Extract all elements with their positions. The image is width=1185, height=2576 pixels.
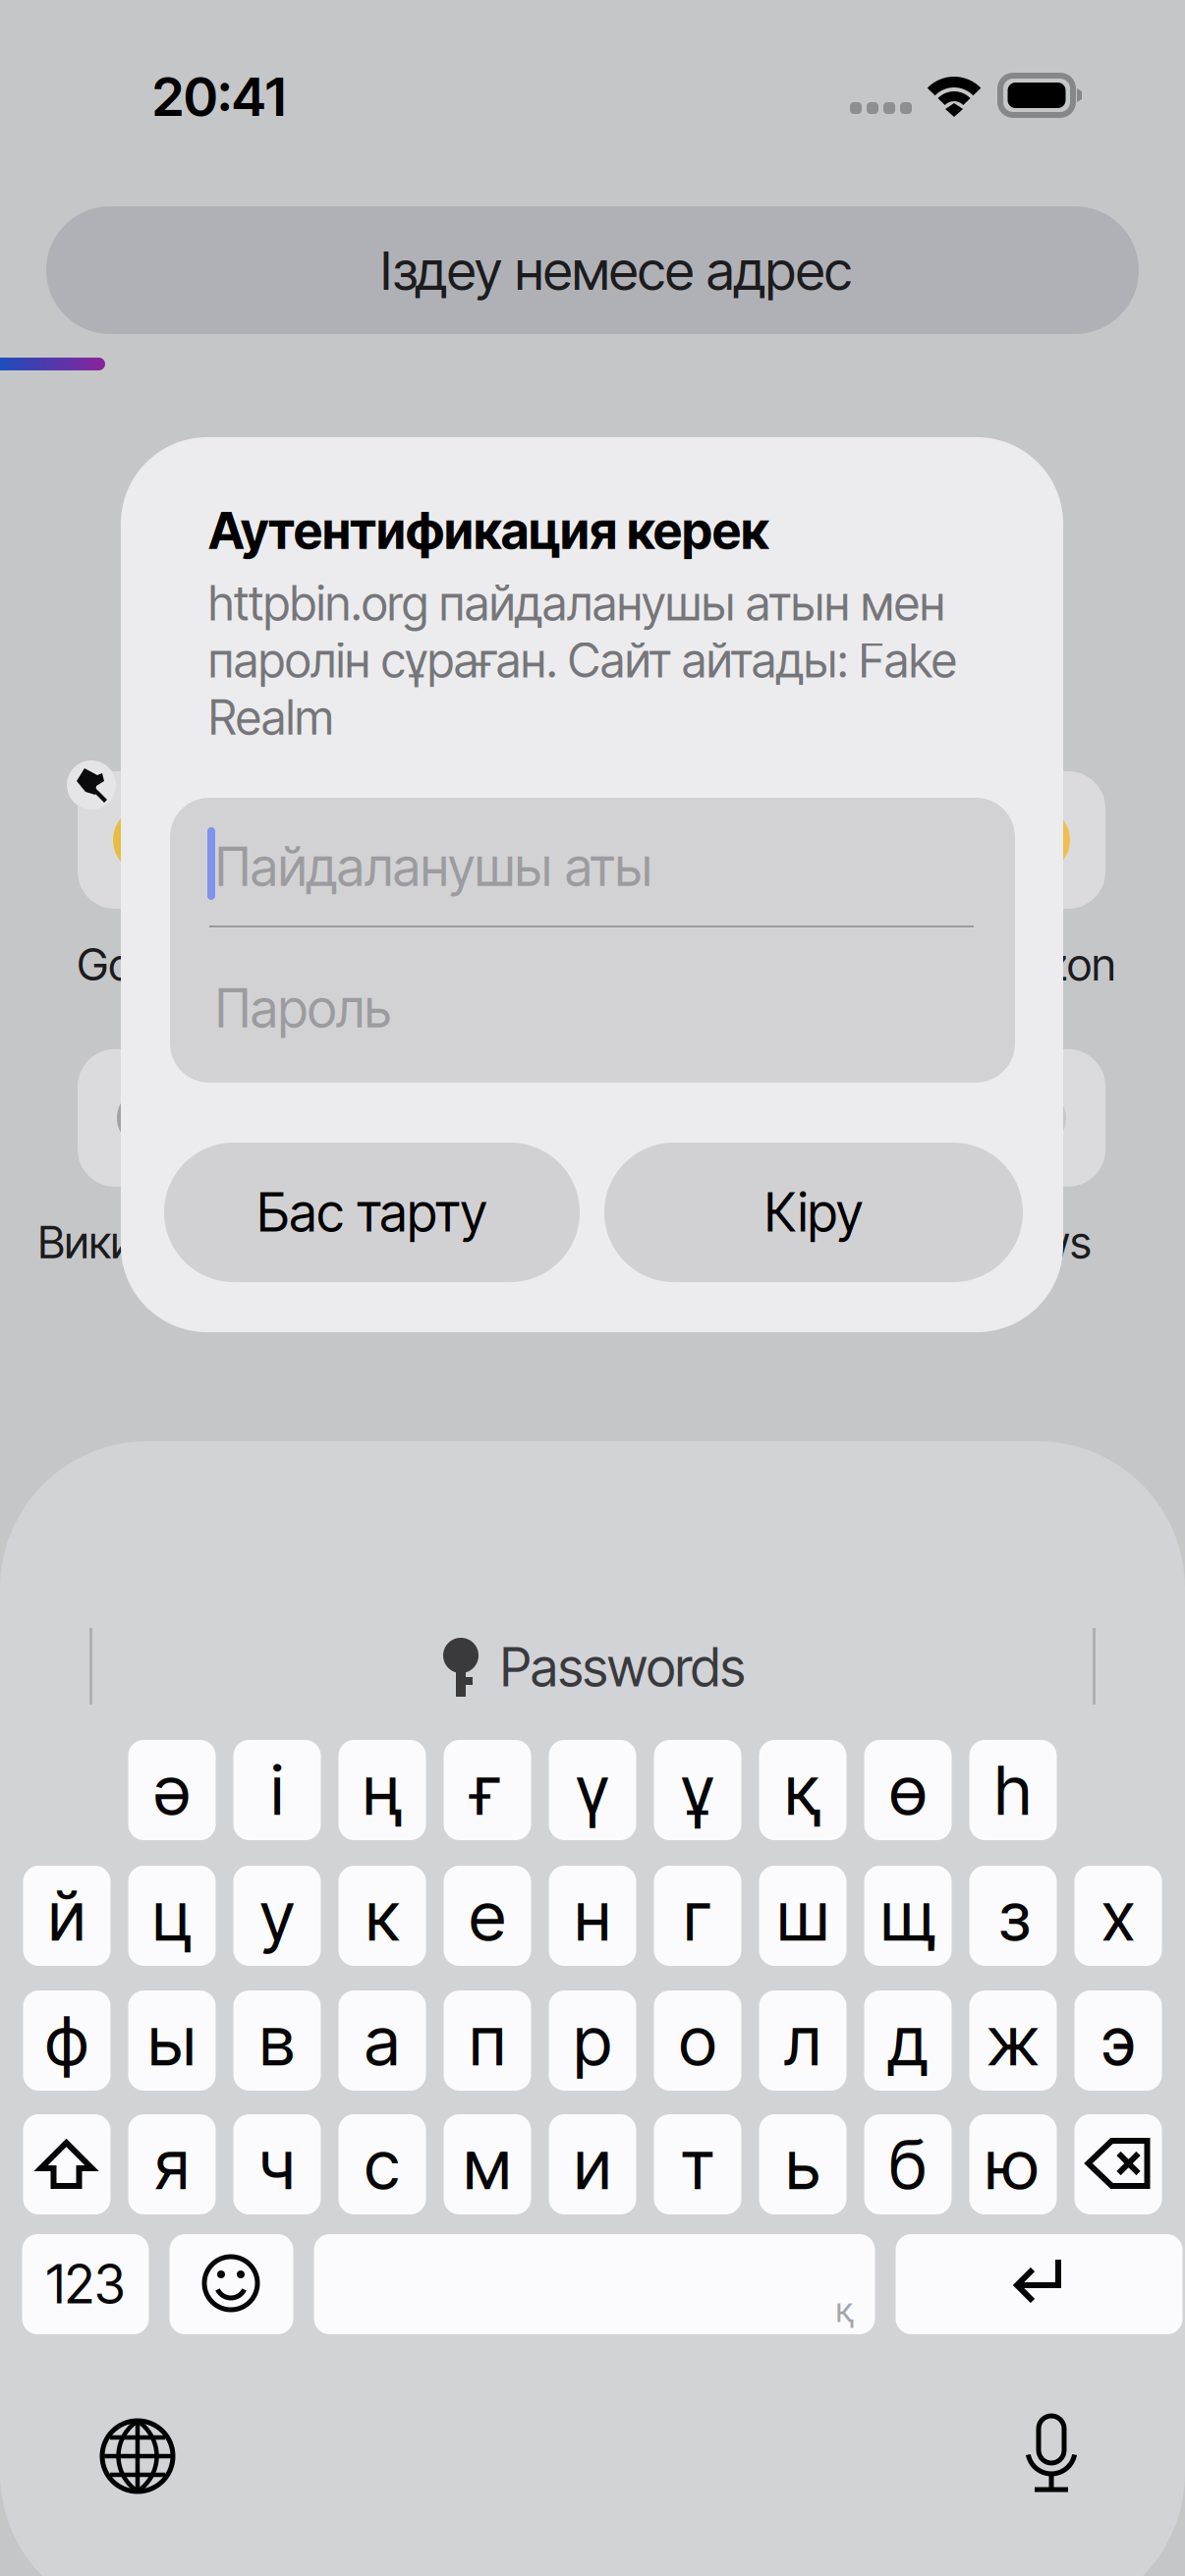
staticText: ң: [363, 1749, 402, 1831]
button[interactable]: Shift: [23, 2114, 111, 2214]
button[interactable]: ж: [969, 1990, 1057, 2091]
button[interactable]: h: [969, 1740, 1057, 1840]
button[interactable]: э: [1074, 1990, 1162, 2091]
button[interactable]: з: [969, 1866, 1057, 1966]
button[interactable]: л: [759, 1990, 846, 2091]
button[interactable]: Кіру: [604, 1143, 1023, 1282]
button[interactable]: ғ: [444, 1740, 531, 1840]
button[interactable]: д: [864, 1990, 952, 2091]
staticText: д: [888, 1999, 928, 2082]
staticText: м: [463, 2123, 511, 2206]
button[interactable]: ө: [864, 1740, 952, 1840]
button[interactable]: ш: [759, 1866, 846, 1966]
button[interactable]: й: [23, 1866, 111, 1966]
staticText: щ: [880, 1875, 935, 1957]
staticText: ө: [889, 1749, 927, 1831]
button[interactable]: ч: [233, 2114, 321, 2214]
staticText: ь: [786, 2123, 820, 2206]
staticText: а: [365, 1999, 400, 2082]
staticText: h: [994, 1749, 1032, 1831]
button[interactable]: ь: [759, 2114, 846, 2214]
staticText: Пароль: [215, 977, 391, 1040]
button[interactable]: о: [654, 1990, 741, 2091]
button[interactable]: ү: [549, 1740, 636, 1840]
staticText: э: [1101, 1999, 1135, 2082]
staticText: п: [469, 1999, 506, 2082]
button[interactable]: ф: [23, 1990, 111, 2091]
button[interactable]: і: [233, 1740, 321, 1840]
button[interactable]: Space: [314, 2234, 875, 2334]
staticText: р: [573, 1999, 612, 2082]
staticText: Amazon: [958, 937, 1115, 991]
button[interactable]: с: [339, 2114, 426, 2214]
button[interactable]: р: [549, 1990, 636, 2091]
staticText: я: [154, 2123, 190, 2206]
staticText: ф: [45, 1999, 88, 2082]
staticText: ш: [777, 1875, 829, 1957]
button[interactable]: г: [654, 1866, 741, 1966]
staticText: в: [259, 1999, 295, 2082]
staticText: ү: [576, 1749, 609, 1831]
staticText: httpbin.org пайдаланушы атын мен паролін…: [208, 575, 957, 746]
staticText: Yandex: [373, 1215, 513, 1269]
staticText: о: [679, 1999, 716, 2082]
button[interactable]: 123: [22, 2234, 149, 2334]
button[interactable]: у: [233, 1866, 321, 1966]
staticText: News: [982, 1215, 1092, 1269]
button[interactable]: ю: [969, 2114, 1057, 2214]
staticText: 123: [46, 2252, 125, 2316]
staticText: н: [574, 1875, 611, 1957]
button[interactable]: Emoji: [169, 2234, 293, 2334]
staticText: к: [366, 1875, 399, 1957]
button[interactable]: х: [1074, 1866, 1162, 1966]
staticText: ц: [152, 1875, 192, 1957]
button[interactable]: в: [233, 1990, 321, 2091]
button[interactable]: Next keyboard: [84, 2402, 192, 2510]
button[interactable]: я: [128, 2114, 216, 2214]
button[interactable]: қ: [759, 1740, 846, 1840]
button[interactable]: щ: [864, 1866, 952, 1966]
staticText: ғ: [473, 1749, 502, 1831]
staticText: қ: [785, 1749, 821, 1831]
button[interactable]: б: [864, 2114, 952, 2214]
button[interactable]: Бас тарту: [164, 1143, 580, 1282]
staticText: г: [683, 1875, 712, 1957]
button[interactable]: ы: [128, 1990, 216, 2091]
staticText: Аутентификация керек: [208, 500, 768, 561]
staticText: Кіру: [764, 1181, 863, 1244]
button[interactable]: Dictation: [997, 2399, 1105, 2507]
button[interactable]: ұ: [654, 1740, 741, 1840]
staticText: л: [784, 1999, 821, 2082]
button[interactable]: Іздеу немесе адрес: [46, 206, 1139, 334]
staticText: т: [681, 2123, 714, 2206]
staticText: ч: [259, 2123, 295, 2206]
button[interactable]: ц: [128, 1866, 216, 1966]
button[interactable]: а: [339, 1990, 426, 2091]
staticText: Пайдаланушы аты: [215, 835, 652, 898]
staticText: қ: [836, 2289, 854, 2330]
staticText: ә: [154, 1749, 190, 1831]
button[interactable]: Delete: [1074, 2114, 1162, 2214]
staticText: Википедия: [38, 1215, 255, 1269]
staticText: Mail: [701, 1215, 779, 1269]
button[interactable]: Return: [896, 2234, 1183, 2334]
button[interactable]: т: [654, 2114, 741, 2214]
staticText: ю: [987, 2123, 1039, 2206]
staticText: и: [574, 2123, 611, 2206]
button[interactable]: п: [444, 1990, 531, 2091]
button[interactable]: к: [339, 1866, 426, 1966]
button[interactable]: ә: [128, 1740, 216, 1840]
staticText: і: [271, 1749, 283, 1831]
button[interactable]: ң: [339, 1740, 426, 1840]
button[interactable]: и: [549, 2114, 636, 2214]
staticText: ж: [987, 1999, 1040, 2082]
staticText: Google: [77, 937, 216, 991]
button[interactable]: м: [444, 2114, 531, 2214]
button[interactable]: е: [444, 1866, 531, 1966]
staticText: й: [48, 1875, 85, 1957]
staticText: Бас тарту: [257, 1181, 487, 1244]
staticText: х: [1101, 1875, 1135, 1957]
button[interactable]: н: [549, 1866, 636, 1966]
